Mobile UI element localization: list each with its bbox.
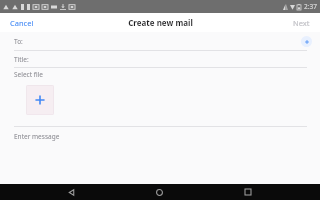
button[interactable]: Next [283, 14, 320, 32]
button[interactable]: Title: [0, 51, 320, 67]
staticText: Enter message [14, 132, 60, 141]
staticText: Title: [14, 55, 29, 64]
button[interactable]: Add recipient [301, 36, 312, 47]
button[interactable]: Recent apps [231, 184, 265, 200]
staticText: Create new mail [128, 17, 193, 28]
staticText: To: [14, 37, 23, 46]
button[interactable]: Cancel [0, 14, 44, 32]
button[interactable]: Back [54, 184, 88, 200]
staticText: Next [293, 18, 310, 28]
button[interactable]: To: [0, 32, 320, 50]
staticText: Cancel [10, 18, 34, 28]
button[interactable]: Enter message [0, 127, 320, 184]
button[interactable]: Add attachment [26, 85, 54, 115]
staticText: Select file [14, 70, 43, 79]
staticText: 2:37 [304, 2, 317, 11]
button[interactable]: Home [142, 184, 176, 200]
